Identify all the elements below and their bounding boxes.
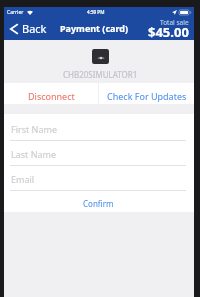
- staticText: First Name: [11, 123, 57, 135]
- button[interactable]: Check For Updates: [99, 83, 194, 104]
- staticText: Disconnect: [28, 90, 75, 102]
- staticText: Last Name: [11, 148, 57, 160]
- button[interactable]: Back: [4, 18, 53, 40]
- staticText: $45.00: [148, 23, 189, 40]
- button[interactable]: First Name: [4, 116, 194, 141]
- staticText: Check For Updates: [107, 90, 187, 102]
- staticText: 4:59 PM: [87, 9, 105, 15]
- button[interactable]: Last Name: [4, 141, 194, 166]
- other: Back: [10, 24, 18, 34]
- staticText: Total sale: [160, 18, 189, 27]
- button[interactable]: Email: [4, 166, 194, 191]
- button[interactable]: Confirm: [4, 191, 194, 212]
- staticText: Payment (card): [60, 22, 129, 34]
- button[interactable]: Disconnect: [4, 83, 98, 104]
- staticText: Confirm: [83, 198, 114, 209]
- staticText: Email: [11, 173, 35, 185]
- staticText: Carrier: [7, 9, 24, 16]
- staticText: CHB20SIMULATOR1: [63, 69, 138, 80]
- staticText: Back: [22, 21, 47, 36]
